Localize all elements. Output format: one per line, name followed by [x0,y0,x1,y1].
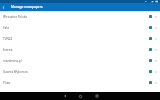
staticText: Manage newspapers [11,5,43,9]
button[interactable]: Back [0,3,7,11]
staticText: Interia [3,48,149,52]
button[interactable]: Gazeta Wyborcza [0,66,160,77]
staticText: Wirtualna Polska [3,15,149,19]
button[interactable]: Recents [91,92,102,100]
button[interactable]: Home [75,92,86,100]
button[interactable]: Fakt [0,22,160,33]
button[interactable]: Interia [0,44,160,55]
button[interactable]: niezalezna.pl [0,55,160,66]
staticText: Fakt [3,26,149,30]
staticText: Gazeta Wyborcza [3,70,149,74]
button[interactable]: TVN24 [0,33,160,44]
staticText: Pluto [3,81,149,85]
button[interactable]: Back [59,92,70,100]
button[interactable]: Pluto [0,77,160,88]
staticText: TVN24 [3,37,149,41]
button[interactable]: Wirtualna Polska [0,11,160,22]
staticText: niezalezna.pl [3,59,149,63]
